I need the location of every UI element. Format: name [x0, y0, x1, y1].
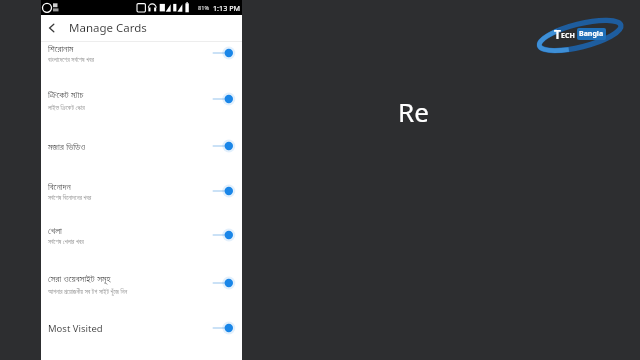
button[interactable]: Toggle খেলা	[208, 227, 234, 243]
staticText: সর্বশেষ বিনোদনের খবর	[48, 193, 92, 201]
staticText: বাংলাদেশের সর্বশেষ খবর	[48, 55, 94, 63]
staticText: আপনার প্রয়োজনীয় সব টপ সাইট খুঁজে নিন	[48, 287, 128, 295]
staticText: সেরা ওয়েবসাইট সমূহ	[48, 272, 111, 285]
button[interactable]: Toggle বিনোদন	[208, 183, 234, 199]
button[interactable]: Toggle ক্রিকেট ম্যাচ	[208, 91, 234, 107]
staticText: মজার ভিডিও	[48, 140, 86, 153]
staticText: Most Visited	[48, 322, 103, 335]
button[interactable]: শিরোনাম	[41, 38, 242, 68]
staticText: খেলা	[48, 226, 62, 235]
button[interactable]: Toggle সেরা ওয়েবসাইট সমূহ	[208, 275, 234, 291]
button[interactable]: বিনোদন	[41, 176, 242, 206]
staticText: শিরোনাম	[48, 44, 74, 53]
staticText: বিনোদন	[48, 182, 71, 191]
button[interactable]: Back	[41, 17, 63, 39]
staticText: লাইভ ক্রিকেট স্কোর	[48, 103, 85, 111]
staticText: 1:13 PM	[213, 3, 240, 13]
button[interactable]: Toggle শিরোনাম	[208, 45, 234, 61]
button[interactable]: Toggle Most Visited	[208, 320, 234, 336]
staticText: 81%	[198, 4, 210, 12]
staticText: ECH	[561, 31, 575, 41]
staticText: Re	[398, 94, 429, 128]
button[interactable]: খেলা	[41, 220, 242, 250]
button[interactable]: Toggle মজার ভিডিও	[208, 138, 234, 154]
staticText: T	[554, 26, 561, 42]
button[interactable]: মজার ভিডিও	[41, 134, 242, 158]
staticText: সর্বশেষ খেলার খবর	[48, 237, 84, 245]
staticText: ক্রিকেট ম্যাচ	[48, 88, 84, 101]
button[interactable]: Most Visited	[41, 316, 242, 340]
staticText: Manage Cards	[69, 20, 147, 36]
staticText: Bangla	[579, 29, 604, 39]
button[interactable]: ক্রিকেট ম্যাচ	[41, 84, 242, 114]
button[interactable]: সেরা ওয়েবসাইট সমূহ	[41, 268, 242, 298]
